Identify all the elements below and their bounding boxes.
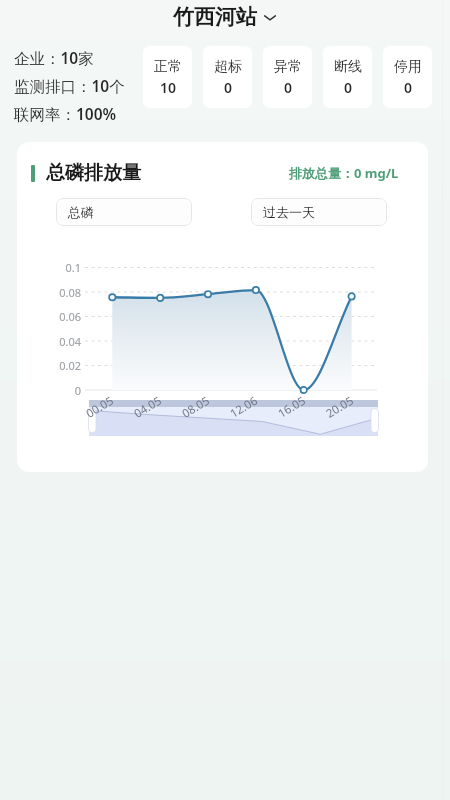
staticText: 过去一天 [263,204,315,220]
staticText: 停用 [394,58,422,76]
staticText: 0.04 [37,334,81,349]
staticText: 20.05 [323,392,357,422]
staticText: 04.05 [131,392,165,422]
staticText: 0 [344,78,353,97]
staticText: 12.06 [227,392,261,422]
staticText: 0 [404,78,413,97]
button[interactable]: 过去一天 [251,198,387,226]
staticText: 0.1 [37,260,81,275]
staticText: 企业：10家 [14,47,94,68]
staticText: 0 [37,383,81,398]
button[interactable]: 正常 [143,46,192,108]
button[interactable]: 总磷 [56,198,192,226]
button[interactable]: 断线 [323,46,372,108]
staticText: 竹西河站 [173,4,257,30]
staticText: 08.05 [179,392,213,422]
staticText: 0.08 [37,285,81,300]
staticText: 10 [160,78,177,97]
staticText: 超标 [214,58,242,76]
button[interactable]: 停用 [383,46,432,108]
staticText: 0 [224,78,233,97]
staticText: 排放总量：0 mg/L [289,164,399,182]
staticText: 联网率：100% [14,103,117,124]
button[interactable]: 异常 [263,46,312,108]
staticText: 总磷 [68,204,94,220]
staticText: 0.02 [37,358,81,373]
staticText: 总磷排放量 [46,161,141,185]
staticText: 0 [284,78,293,97]
staticText: 异常 [274,58,302,76]
button[interactable]: 竹西河站 [173,4,277,30]
button[interactable]: 超标 [203,46,252,108]
staticText: 正常 [154,58,182,76]
staticText: 16.05 [275,392,309,422]
staticText: 断线 [334,58,362,76]
staticText: 0.06 [37,309,81,324]
staticText: 监测排口：10个 [14,75,125,96]
staticText: 00.05 [83,392,117,422]
